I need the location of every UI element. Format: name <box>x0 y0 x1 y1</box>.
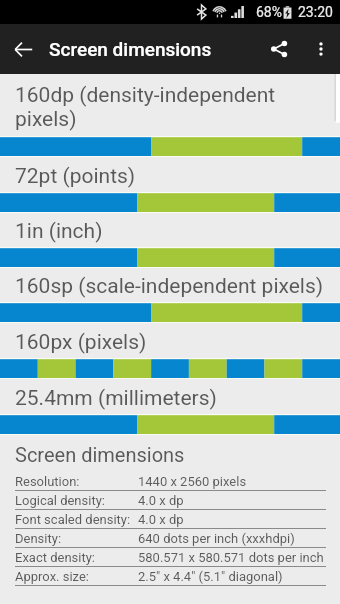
staticText: 160dp (density-independent pixels) <box>15 83 332 131</box>
staticText: Font scaled density: <box>15 512 138 527</box>
button[interactable]: Navigate up <box>0 24 46 74</box>
staticText: 2.5" x 4.4" (5.1" diagonal) <box>138 569 283 584</box>
staticText: Approx. size: <box>15 569 138 584</box>
staticText: 160sp (scale-independent pixels) <box>15 274 324 299</box>
button[interactable]: 72pt (points) <box>0 157 340 192</box>
staticText: Density: <box>15 531 138 546</box>
button[interactable]: 25.4mm (millimeters) <box>0 379 340 414</box>
button[interactable]: 160sp (scale-independent pixels) <box>0 268 340 302</box>
staticText: 72pt (points) <box>15 164 136 189</box>
staticText: Resolution: <box>15 474 138 489</box>
button[interactable]: 160dp (density-independent pixels) <box>0 74 340 136</box>
staticText: 1in (inch) <box>15 219 103 244</box>
staticText: 4.0 x dp <box>138 512 184 527</box>
staticText: Logical density: <box>15 493 138 508</box>
staticText: 68% <box>256 4 282 20</box>
staticText: 580.571 x 580.571 dots per inch <box>138 550 324 565</box>
staticText: 25.4mm (millimeters) <box>15 386 217 411</box>
button[interactable]: More options <box>302 24 340 74</box>
staticText: 23:20 <box>298 4 333 20</box>
staticText: 4.0 x dp <box>138 493 184 508</box>
button[interactable]: 1in (inch) <box>0 213 340 247</box>
button[interactable]: 160px (pixels) <box>0 323 340 358</box>
button[interactable]: Share <box>256 24 302 74</box>
staticText: 160px (pixels) <box>15 330 147 355</box>
staticText: 1440 x 2560 pixels <box>138 474 247 489</box>
staticText: Screen dimensions <box>49 38 212 60</box>
staticText: Exact density: <box>15 550 138 565</box>
staticText: 640 dots per inch (xxxhdpi) <box>138 531 295 546</box>
staticText: Screen dimensions <box>15 443 185 466</box>
